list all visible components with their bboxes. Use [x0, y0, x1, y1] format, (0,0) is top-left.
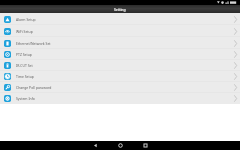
- button[interactable]: Back: [91, 141, 100, 150]
- staticText: Change PoE password: [16, 85, 234, 90]
- button[interactable]: IR-CUT Set: [0, 60, 240, 71]
- button[interactable]: Ethernet/Network Set: [0, 37, 240, 49]
- staticText: WiFi Setup: [16, 29, 234, 34]
- button[interactable]: WiFi Setup: [0, 25, 240, 37]
- staticText: Alarm Setup: [16, 17, 234, 22]
- button[interactable]: Alarm Setup: [0, 13, 240, 25]
- button[interactable]: Change PoE password: [0, 82, 240, 93]
- button[interactable]: System Info: [0, 93, 240, 104]
- button[interactable]: PTZ Setup: [0, 49, 240, 60]
- staticText: Ethernet/Network Set: [16, 41, 234, 46]
- staticText: Time Setup: [16, 74, 234, 79]
- button[interactable]: Time Setup: [0, 71, 240, 82]
- button[interactable]: Home: [116, 141, 125, 150]
- staticText: IR-CUT Set: [16, 63, 234, 68]
- button[interactable]: Recents: [141, 141, 150, 150]
- staticText: System Info: [16, 96, 234, 101]
- staticText: Setting: [114, 7, 126, 12]
- staticText: PTZ Setup: [16, 52, 234, 57]
